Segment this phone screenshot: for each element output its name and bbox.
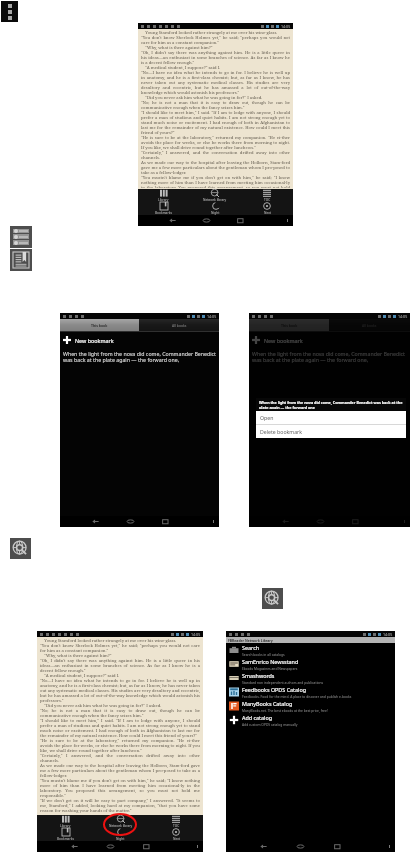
button[interactable]: Home (106, 842, 115, 851)
button[interactable]: Open (256, 411, 406, 424)
staticText: 14:05 (398, 314, 408, 319)
staticText: 14:05 (207, 314, 217, 319)
staticText: Library (60, 824, 71, 828)
staticText: When the light from the nova did come, C… (63, 350, 216, 364)
button[interactable]: New bookmark (249, 335, 410, 345)
staticText: All books (172, 323, 187, 328)
staticText: 14:05 (383, 632, 393, 637)
button[interactable]: SamEnrico Newsstand (226, 657, 395, 671)
button[interactable]: Recents (351, 517, 360, 526)
staticText: Night (211, 211, 220, 215)
button[interactable]: Overflow menu (1, 1, 18, 22)
staticText: TOC (264, 198, 271, 202)
button[interactable]: Back (168, 216, 177, 225)
button[interactable]: Night (189, 202, 241, 215)
button[interactable]: Network library (10, 538, 31, 559)
staticText: Network library (203, 198, 227, 202)
staticText: Library (158, 198, 169, 202)
button[interactable]: Network library (189, 189, 241, 202)
button[interactable]: Recents (333, 842, 342, 851)
button[interactable]: Back (281, 517, 290, 526)
button[interactable]: TOC (148, 815, 203, 828)
staticText: This book (281, 323, 298, 328)
staticText: Search books in all catalogs (242, 652, 285, 656)
staticText: FBReader Network Library (228, 638, 273, 643)
button[interactable]: Back (70, 842, 79, 851)
button[interactable]: Home (126, 517, 135, 526)
button[interactable]: Smashwords (226, 671, 395, 685)
button[interactable]: Next (148, 828, 203, 841)
button[interactable]: When the light from the nova did come, C… (60, 350, 219, 364)
button[interactable]: Recents (142, 842, 151, 851)
button[interactable]: All books (139, 319, 219, 331)
button[interactable]: Home (202, 216, 211, 225)
staticText: Add custom OPDS catalog manually (242, 722, 298, 726)
staticText: Young Stamford looked rather strangely a… (40, 638, 200, 813)
button[interactable]: Bookmarks (138, 202, 189, 215)
staticText: Bookmarks (57, 837, 74, 841)
staticText: ManyBooks Catalog (242, 700, 293, 707)
staticText: Next (264, 211, 271, 215)
staticText: When the light from the nova did come, C… (259, 400, 403, 409)
staticText: Next (173, 837, 180, 841)
button[interactable]: This book (60, 319, 139, 331)
button[interactable]: Library (37, 815, 93, 828)
staticText: ManyBooks.net. The best ebooks at the be… (242, 708, 328, 712)
staticText: Standard non independent authors and pub… (242, 680, 324, 684)
staticText: New bookmark (264, 337, 303, 344)
button[interactable]: Next (241, 202, 293, 215)
button[interactable]: Bookmarks (37, 828, 93, 841)
staticText: Night (116, 837, 125, 841)
button[interactable]: TOC (241, 189, 293, 202)
button[interactable]: More (402, 519, 407, 524)
button[interactable]: More (285, 218, 290, 223)
button[interactable]: Delete bookmark (256, 425, 406, 438)
button[interactable]: More (387, 844, 392, 849)
button[interactable]: New bookmark (60, 335, 219, 345)
button[interactable]: Library list (10, 226, 32, 248)
button[interactable]: Recents (161, 517, 170, 526)
button[interactable]: Network library (262, 588, 283, 609)
button[interactable]: When the light from the nova did come, C… (249, 350, 410, 364)
button[interactable]: This book (249, 319, 329, 331)
button[interactable]: Back (91, 517, 100, 526)
button[interactable]: Network library (93, 815, 148, 828)
staticText: Feedbooks. Food for the mind. A place to… (242, 694, 352, 698)
staticText: TOC (173, 824, 180, 828)
button[interactable]: Home (296, 842, 305, 851)
staticText: Open (260, 414, 274, 421)
staticText: New bookmark (75, 337, 114, 344)
button[interactable]: ManyBooks Catalog (226, 699, 395, 713)
staticText: Ebooks Magazines and Newspapers (242, 666, 298, 670)
button[interactable]: More (211, 519, 216, 524)
button[interactable]: Recents (236, 216, 245, 225)
staticText: Smashwords (242, 672, 275, 679)
button[interactable]: Add catalog (226, 713, 395, 727)
staticText: Young Stamford looked rather strangely a… (141, 30, 290, 188)
staticText: Feedbooks OPDS Catalog (242, 686, 307, 693)
button[interactable]: More (195, 844, 200, 849)
staticText: This book (91, 323, 108, 328)
button[interactable]: Feedbooks OPDS Catalog (226, 685, 395, 699)
button[interactable]: Night (93, 828, 148, 841)
staticText: Search (242, 644, 260, 651)
button[interactable]: Library (138, 189, 189, 202)
staticText: Network library (109, 824, 133, 828)
button[interactable]: Home (316, 517, 325, 526)
staticText: 14:05 (281, 24, 291, 29)
staticText: All books (362, 323, 377, 328)
staticText: SamEnrico Newsstand (242, 658, 299, 665)
staticText: Bookmarks (155, 211, 172, 215)
button[interactable]: Bookmarks (10, 249, 32, 271)
staticText: When the light from the nova did come, C… (252, 350, 407, 364)
staticText: 14:05 (191, 632, 201, 637)
button[interactable]: Search (226, 643, 395, 657)
button[interactable]: Back (259, 842, 268, 851)
staticText: Add catalog (242, 714, 273, 721)
staticText: Delete bookmark (260, 428, 303, 435)
